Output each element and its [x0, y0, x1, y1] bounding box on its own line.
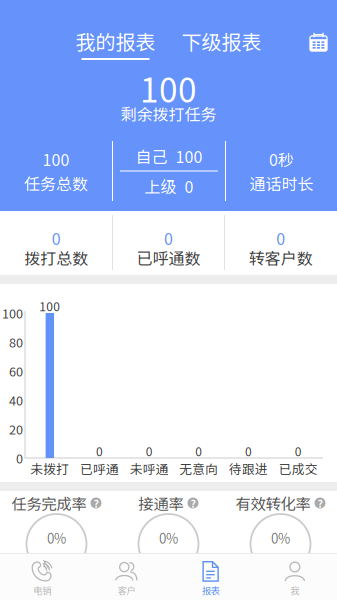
staticText: 0 [245, 442, 252, 460]
staticText: 我的报表 [75, 26, 155, 55]
staticText: 未呼通 [130, 459, 169, 478]
staticText: 0 [195, 442, 202, 460]
staticText: 100 [140, 64, 197, 112]
staticText: 100 [39, 297, 60, 315]
staticText: 0 [276, 226, 285, 250]
staticText: ? [317, 495, 322, 511]
staticText: 20 [9, 420, 23, 438]
button[interactable]: 报表 [168, 554, 253, 600]
staticText: 0% [47, 528, 66, 548]
staticText: 0 [295, 442, 302, 460]
staticText: 无意向 [179, 459, 218, 478]
staticText: 客户 [117, 583, 135, 597]
button[interactable]: 客户 [84, 554, 168, 600]
staticText: ? [93, 495, 98, 511]
button[interactable]: 下级报表 [181, 30, 261, 60]
staticText: 待跟进 [229, 459, 268, 478]
button[interactable]: 我的报表 [75, 30, 155, 60]
staticText: 0% [159, 528, 178, 548]
staticText: 通话时长 [249, 171, 313, 195]
staticText: 0 [164, 226, 173, 250]
staticText: 0 [52, 226, 61, 250]
staticText: 我 [290, 583, 299, 597]
button[interactable]: 电销 [0, 554, 84, 600]
button[interactable]: 我 [253, 554, 337, 600]
staticText: 有效转化率 [235, 492, 310, 514]
staticText: 自己 100 [135, 144, 202, 168]
staticText: 报表 [202, 583, 220, 597]
staticText: 接通率 [138, 492, 183, 514]
staticText: 0 [16, 449, 23, 467]
staticText: 未拨打 [30, 459, 69, 478]
staticText: ? [190, 495, 195, 511]
staticText: 剩余拨打任务 [120, 102, 216, 125]
staticText: 已呼通数 [136, 246, 200, 269]
staticText: 电销 [33, 583, 51, 597]
button[interactable]: Calendar [309, 32, 328, 52]
staticText: 下级报表 [181, 26, 261, 55]
staticText: 80 [9, 333, 23, 351]
staticText: 60 [9, 362, 23, 380]
staticText: 0% [271, 528, 290, 548]
staticText: 上级 0 [144, 174, 193, 198]
staticText: 任务总数 [24, 171, 88, 195]
staticText: 任务完成率 [11, 492, 86, 514]
staticText: 100 [42, 147, 69, 171]
staticText: 0 [96, 442, 103, 460]
staticText: 40 [9, 391, 23, 409]
staticText: 0 [146, 442, 153, 460]
staticText: 已呼通 [80, 459, 119, 478]
staticText: 已成交 [279, 459, 318, 478]
staticText: 0秒 [269, 147, 294, 171]
staticText: 转客户数 [249, 246, 313, 269]
staticText: 100 [2, 304, 23, 322]
staticText: 拨打总数 [24, 246, 88, 269]
